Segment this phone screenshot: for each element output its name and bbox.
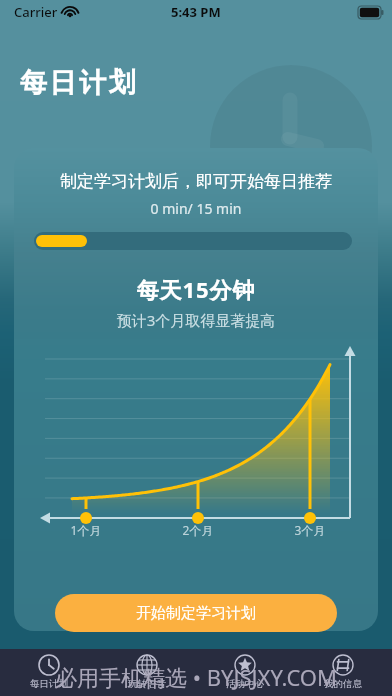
button[interactable]: 每日计划 <box>0 649 98 696</box>
staticText: 我的信息 <box>324 678 362 690</box>
button[interactable]: 我的信息 <box>294 649 392 696</box>
button[interactable]: 玩转语音 <box>98 649 196 696</box>
button[interactable]: 开始制定学习计划 <box>55 594 337 632</box>
staticText: 1个月 <box>56 522 116 538</box>
staticText: 开始制定学习计划 <box>136 604 256 623</box>
staticText: 0 min/ 15 min <box>0 199 392 218</box>
staticText: 玩转语音 <box>128 678 166 690</box>
staticText: 5:43 PM <box>171 3 221 21</box>
staticText: 每日计划 <box>20 66 139 100</box>
staticText: 2个月 <box>168 522 228 538</box>
staticText: 每天15分钟 <box>0 274 392 304</box>
button[interactable]: 活动中心 <box>196 649 294 696</box>
staticText: 必用手机精选 • BYJSJXY.COM <box>0 662 392 692</box>
staticText: Carrier <box>14 3 58 21</box>
staticText: 制定学习计划后，即可开始每日推荐 <box>0 171 392 192</box>
staticText: 活动中心 <box>226 678 264 690</box>
staticText: 3个月 <box>280 522 340 538</box>
staticText: 每日计划 <box>30 678 68 690</box>
staticText: 预计3个月取得显著提高 <box>0 310 392 330</box>
